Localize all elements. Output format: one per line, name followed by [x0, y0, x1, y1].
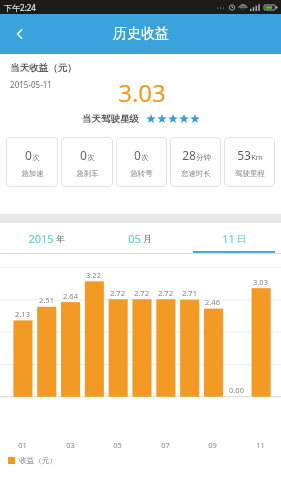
staticText: 03 [66, 440, 75, 450]
staticText: 53 [237, 147, 251, 163]
staticText: 0 [80, 147, 87, 163]
staticText: 日 [237, 233, 246, 244]
staticText: 2015 [28, 231, 54, 246]
staticText: 0.00 [229, 385, 244, 395]
button[interactable]: Back [0, 14, 40, 54]
staticText: 3.22 [86, 270, 101, 280]
button[interactable]: 11 [187, 223, 281, 253]
staticText: 怠速时长 [181, 169, 211, 178]
staticText: 急转弯 [130, 169, 153, 178]
staticText: 0 [25, 147, 32, 163]
staticText: 急加速 [21, 169, 44, 178]
button[interactable]: 28 [170, 137, 221, 187]
button[interactable]: 0 [116, 137, 167, 187]
staticText: 年 [56, 233, 65, 244]
button[interactable]: 05 [93, 223, 187, 253]
staticText: 月 [143, 233, 152, 244]
staticText: 07 [161, 440, 170, 450]
staticText: 次 [87, 153, 95, 162]
staticText: 分钟 [196, 153, 211, 162]
staticText: Km [251, 152, 263, 162]
staticText: 28 [182, 147, 196, 163]
button[interactable]: 53 [224, 137, 275, 187]
staticText: 2.72 [158, 288, 173, 298]
staticText: 11 [256, 440, 265, 450]
staticText: 05 [128, 231, 141, 246]
staticText: 2015-05-11 [10, 79, 52, 90]
staticText: 3.03 [118, 76, 166, 109]
staticText: 下午2:24 [4, 2, 36, 13]
staticText: 次 [141, 153, 149, 162]
staticText: 2.13 [15, 309, 30, 319]
staticText: 01 [18, 440, 27, 450]
staticText: 0 [134, 147, 141, 163]
staticText: 2.64 [63, 291, 78, 301]
staticText: 急刹车 [76, 169, 99, 178]
button[interactable]: 2015 [0, 223, 93, 253]
staticText: 2.71 [182, 288, 197, 298]
staticText: 05 [113, 440, 122, 450]
staticText: 2.51 [39, 295, 54, 305]
staticText: 09 [208, 440, 217, 450]
staticText: 当天收益（元） [10, 62, 77, 74]
staticText: 次 [32, 153, 40, 162]
staticText: 3.03 [253, 277, 268, 287]
button[interactable]: 0 [61, 137, 113, 187]
staticText: 2.72 [134, 288, 149, 298]
staticText: 历史收益 [113, 25, 169, 43]
button[interactable]: 0 [6, 137, 58, 187]
staticText: 11 [222, 231, 235, 246]
staticText: 当天驾驶星级 [82, 113, 139, 125]
staticText: 收益（元） [19, 456, 57, 465]
staticText: 2.46 [205, 297, 220, 307]
staticText: 驾驶里程 [235, 169, 265, 178]
staticText: 2.72 [110, 288, 125, 298]
